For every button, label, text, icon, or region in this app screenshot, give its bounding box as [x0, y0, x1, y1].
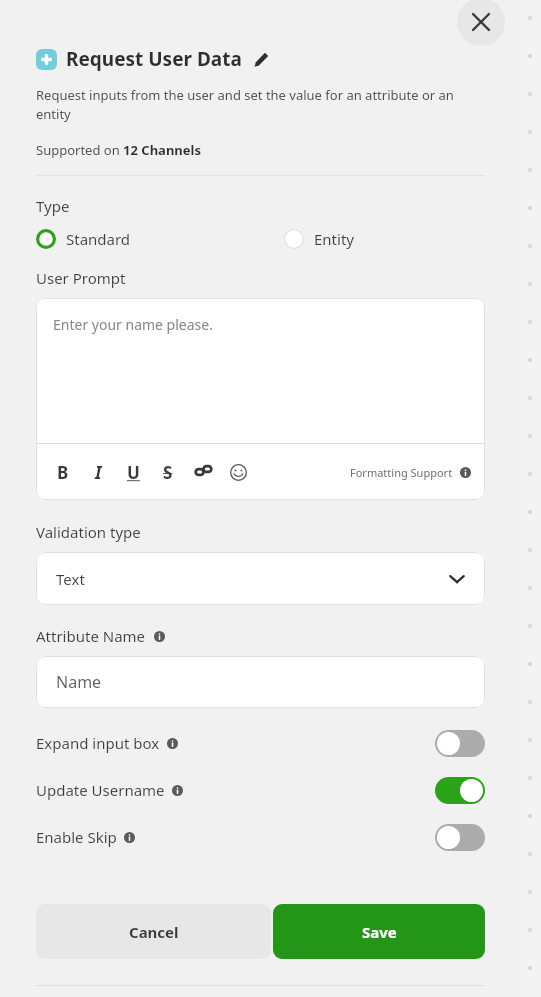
button[interactable]: Link — [190, 459, 216, 485]
staticText: Standard — [66, 229, 131, 249]
staticText: U — [127, 461, 140, 484]
staticText: Text — [56, 569, 85, 589]
button[interactable]: Entity — [284, 229, 354, 249]
button[interactable]: Name — [36, 656, 485, 708]
button[interactable]: Expand input box — [36, 720, 485, 766]
button[interactable]: Enable Skip — [435, 824, 485, 851]
button[interactable]: Cancel — [36, 904, 271, 959]
staticText: Request inputs from the user and set the… — [36, 86, 476, 123]
staticText: Name — [56, 671, 102, 693]
button[interactable]: Edit — [251, 49, 271, 69]
staticText: I — [95, 461, 102, 484]
staticText: Attribute Name — [36, 626, 146, 646]
button[interactable]: Text — [36, 552, 485, 605]
button[interactable]: Update Username — [36, 766, 485, 814]
staticText: Enable Skip — [36, 827, 117, 847]
staticText: Type — [36, 196, 70, 216]
button[interactable]: Formatting Support — [350, 465, 471, 480]
button[interactable]: Underline — [120, 459, 146, 485]
staticText: User Prompt — [36, 268, 126, 288]
button[interactable]: Bold — [50, 459, 76, 485]
staticText: Supported on 12 Channels — [36, 141, 201, 159]
staticText: Update Username — [36, 780, 165, 800]
staticText: Entity — [314, 229, 354, 249]
staticText: Save — [362, 922, 397, 942]
button[interactable]: Strikethrough — [155, 459, 181, 485]
button[interactable]: Save — [273, 904, 485, 959]
staticText: Request User Data — [66, 46, 242, 72]
staticText: Expand input box — [36, 733, 160, 753]
button[interactable]: Enter your name please. — [36, 298, 485, 443]
button[interactable]: Standard — [36, 229, 131, 249]
staticText: Formatting Support — [350, 465, 453, 480]
staticText: Cancel — [129, 922, 179, 942]
staticText: Enter your name please. — [53, 315, 213, 334]
button[interactable]: Italic — [85, 459, 111, 485]
staticText: B — [57, 461, 69, 484]
button[interactable]: Update Username — [435, 777, 485, 804]
button[interactable]: Expand input box — [435, 730, 485, 757]
staticText: S — [163, 461, 173, 484]
button[interactable]: Enable Skip — [36, 814, 485, 860]
button[interactable]: Emoji — [225, 459, 251, 485]
staticText: Validation type — [36, 522, 141, 542]
button[interactable]: Close — [457, 0, 505, 46]
